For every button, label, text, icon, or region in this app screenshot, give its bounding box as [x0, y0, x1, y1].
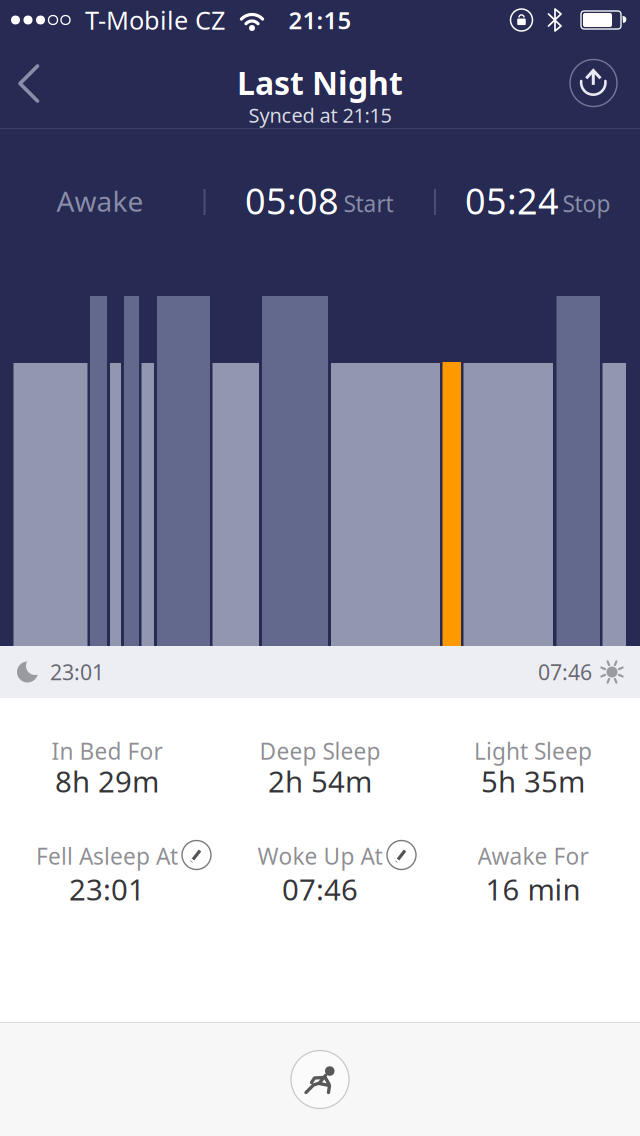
button[interactable]: Share: [562, 51, 625, 114]
staticText: Fell Asleep At: [36, 841, 178, 871]
staticText: 07:46: [282, 869, 358, 908]
staticText: 2h 54m: [268, 761, 372, 800]
staticText: Stop: [562, 188, 610, 218]
button[interactable]: Back: [5, 52, 56, 115]
staticText: 23:01: [50, 658, 104, 686]
staticText: 07:46: [538, 658, 592, 686]
staticText: Woke Up At: [257, 841, 382, 871]
staticText: 05:08: [245, 177, 339, 224]
staticText: Last Night: [237, 61, 403, 104]
staticText: Start: [343, 188, 393, 218]
button[interactable]: Activity: [291, 1050, 349, 1108]
staticText: 05:24: [465, 177, 559, 224]
staticText: 5h 35m: [481, 761, 585, 800]
staticText: 23:01: [69, 869, 145, 908]
staticText: Awake: [56, 182, 143, 220]
staticText: In Bed For: [51, 736, 162, 766]
staticText: Awake For: [477, 841, 588, 871]
staticText: 21:15: [288, 4, 351, 36]
staticText: 8h 29m: [55, 761, 159, 800]
button[interactable]: Edit: [387, 840, 416, 869]
staticText: Deep Sleep: [259, 736, 380, 766]
button[interactable]: Edit: [182, 840, 211, 869]
staticText: Synced at 21:15: [248, 102, 391, 128]
staticText: T-Mobile CZ: [85, 3, 225, 37]
staticText: Light Sleep: [474, 736, 592, 766]
staticText: 16 min: [485, 869, 580, 908]
